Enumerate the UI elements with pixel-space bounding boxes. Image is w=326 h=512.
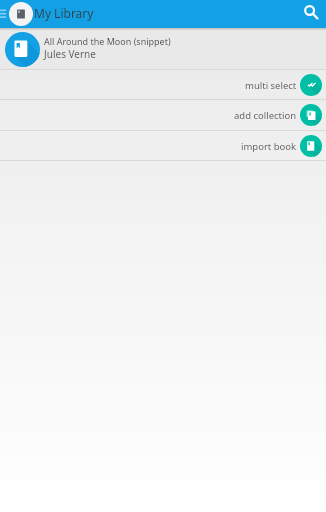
staticText: multi select [245,79,297,92]
other: Import book [300,135,322,157]
button[interactable]: Search [298,0,326,28]
staticText: All Around the Moon (snippet) [44,35,171,47]
staticText: import book [241,140,297,153]
button[interactable]: Menu [0,0,9,28]
staticText: Jules Verne [44,47,96,61]
other: Multi select [300,74,322,96]
button[interactable]: multi select [0,70,326,99]
button[interactable]: import book [0,131,326,160]
button[interactable]: add collection [0,100,326,130]
button[interactable]: Library [9,2,33,26]
staticText: add collection [234,109,297,122]
button[interactable]: All Around the Moon (snippet) [0,31,326,69]
other: Add collection [300,104,322,126]
staticText: My Library [34,5,94,21]
